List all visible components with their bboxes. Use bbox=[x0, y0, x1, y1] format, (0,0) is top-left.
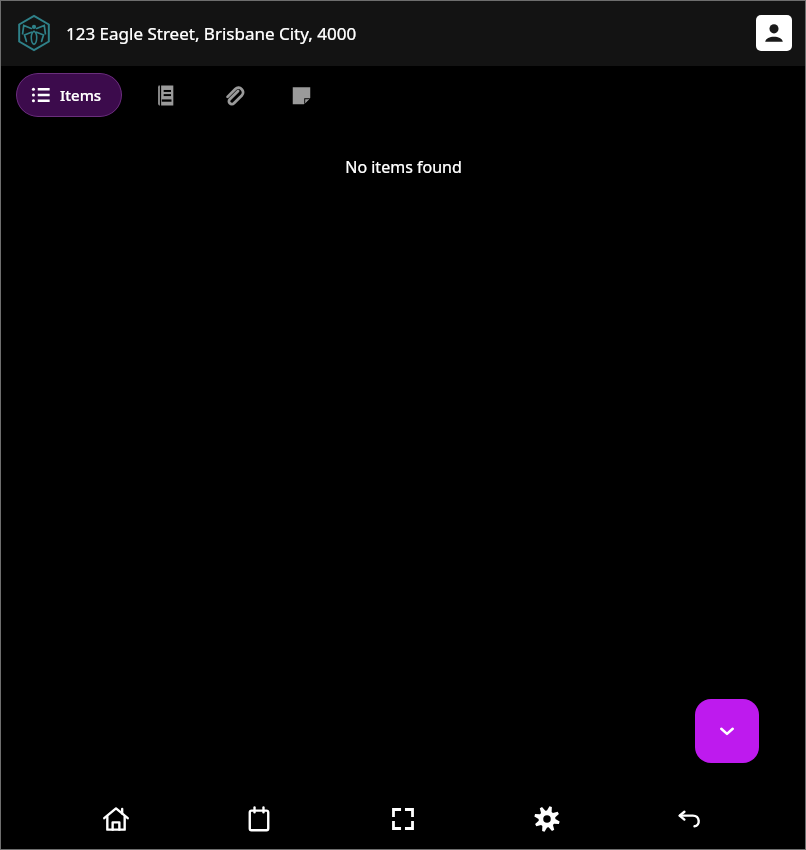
button[interactable]: Calendar bbox=[231, 791, 287, 847]
button[interactable]: Documents bbox=[144, 74, 186, 116]
button[interactable]: Account bbox=[756, 15, 792, 51]
button[interactable]: Items bbox=[16, 73, 122, 117]
staticText: 123 Eagle Street, Brisbane City, 4000 bbox=[66, 22, 357, 45]
staticText: Items bbox=[60, 85, 102, 105]
button[interactable]: Expand bbox=[695, 699, 759, 763]
button[interactable]: Back bbox=[662, 791, 718, 847]
button[interactable]: Attachments bbox=[212, 74, 254, 116]
button[interactable]: Scan bbox=[375, 791, 431, 847]
button[interactable]: Home bbox=[88, 791, 144, 847]
staticText: No items found bbox=[345, 156, 462, 178]
button[interactable]: Notes bbox=[280, 74, 322, 116]
button[interactable]: Settings bbox=[519, 791, 575, 847]
button[interactable]: App logo bbox=[14, 13, 54, 53]
